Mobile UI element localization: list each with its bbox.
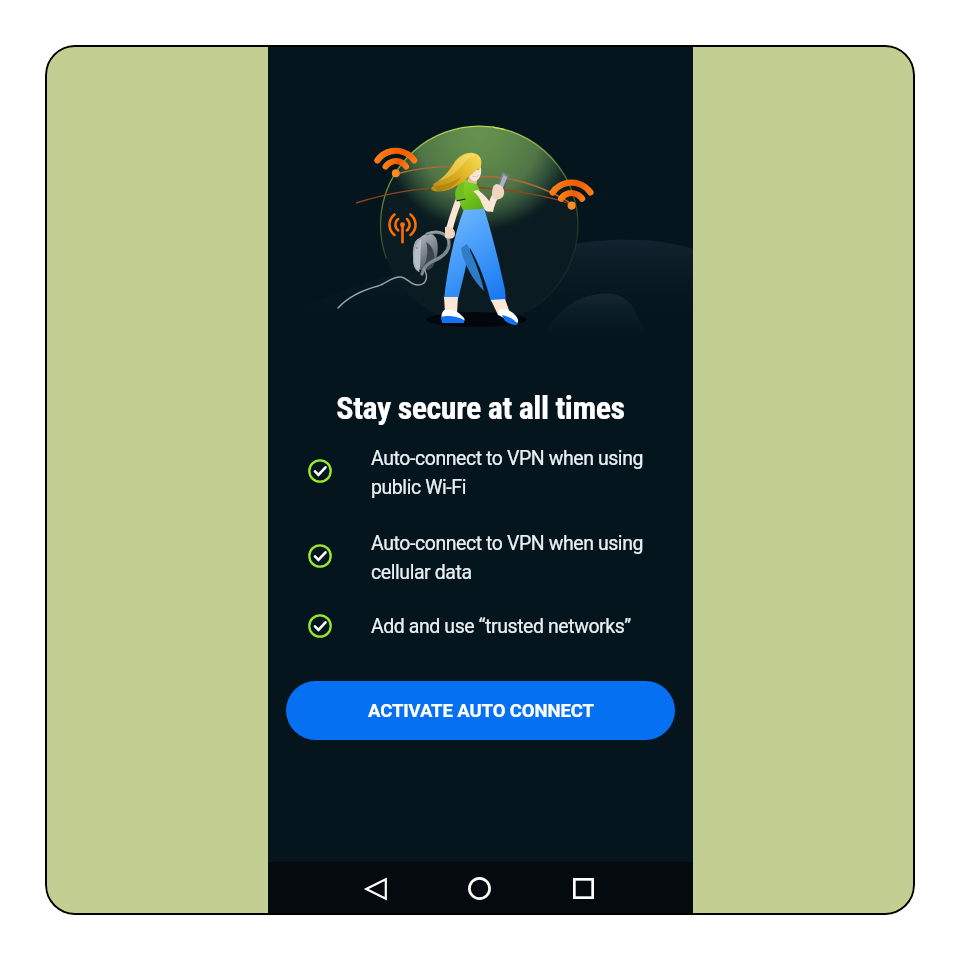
button[interactable]: Recent apps [556, 862, 611, 915]
staticText: Auto-connect to VPN when using cellular … [371, 532, 661, 584]
button[interactable]: Home [452, 862, 507, 915]
button[interactable]: Back [348, 862, 403, 915]
button[interactable]: ACTIVATE AUTO CONNECT [286, 681, 675, 740]
staticText: ACTIVATE AUTO CONNECT [368, 700, 594, 722]
staticText: Auto-connect to VPN when using public Wi… [371, 447, 661, 499]
staticText: Add and use “trusted networks” [371, 615, 661, 638]
staticText: Stay secure at all times [268, 389, 693, 427]
